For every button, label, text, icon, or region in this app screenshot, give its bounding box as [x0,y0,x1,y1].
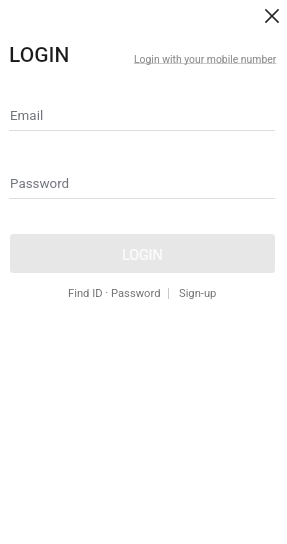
staticText: Password [10,176,70,192]
button[interactable]: Find ID · Password [68,283,161,304]
button[interactable]: Login with your mobile number [132,51,279,67]
staticText: Email [10,108,44,124]
button[interactable]: Email [9,100,275,130]
staticText: LOGIN [9,43,70,68]
button[interactable]: Sign-up [179,283,217,304]
button[interactable]: Password [9,168,275,198]
staticText: Login with your mobile number [134,53,277,65]
button[interactable]: Close [256,0,287,31]
staticText: LOGIN [122,247,163,264]
